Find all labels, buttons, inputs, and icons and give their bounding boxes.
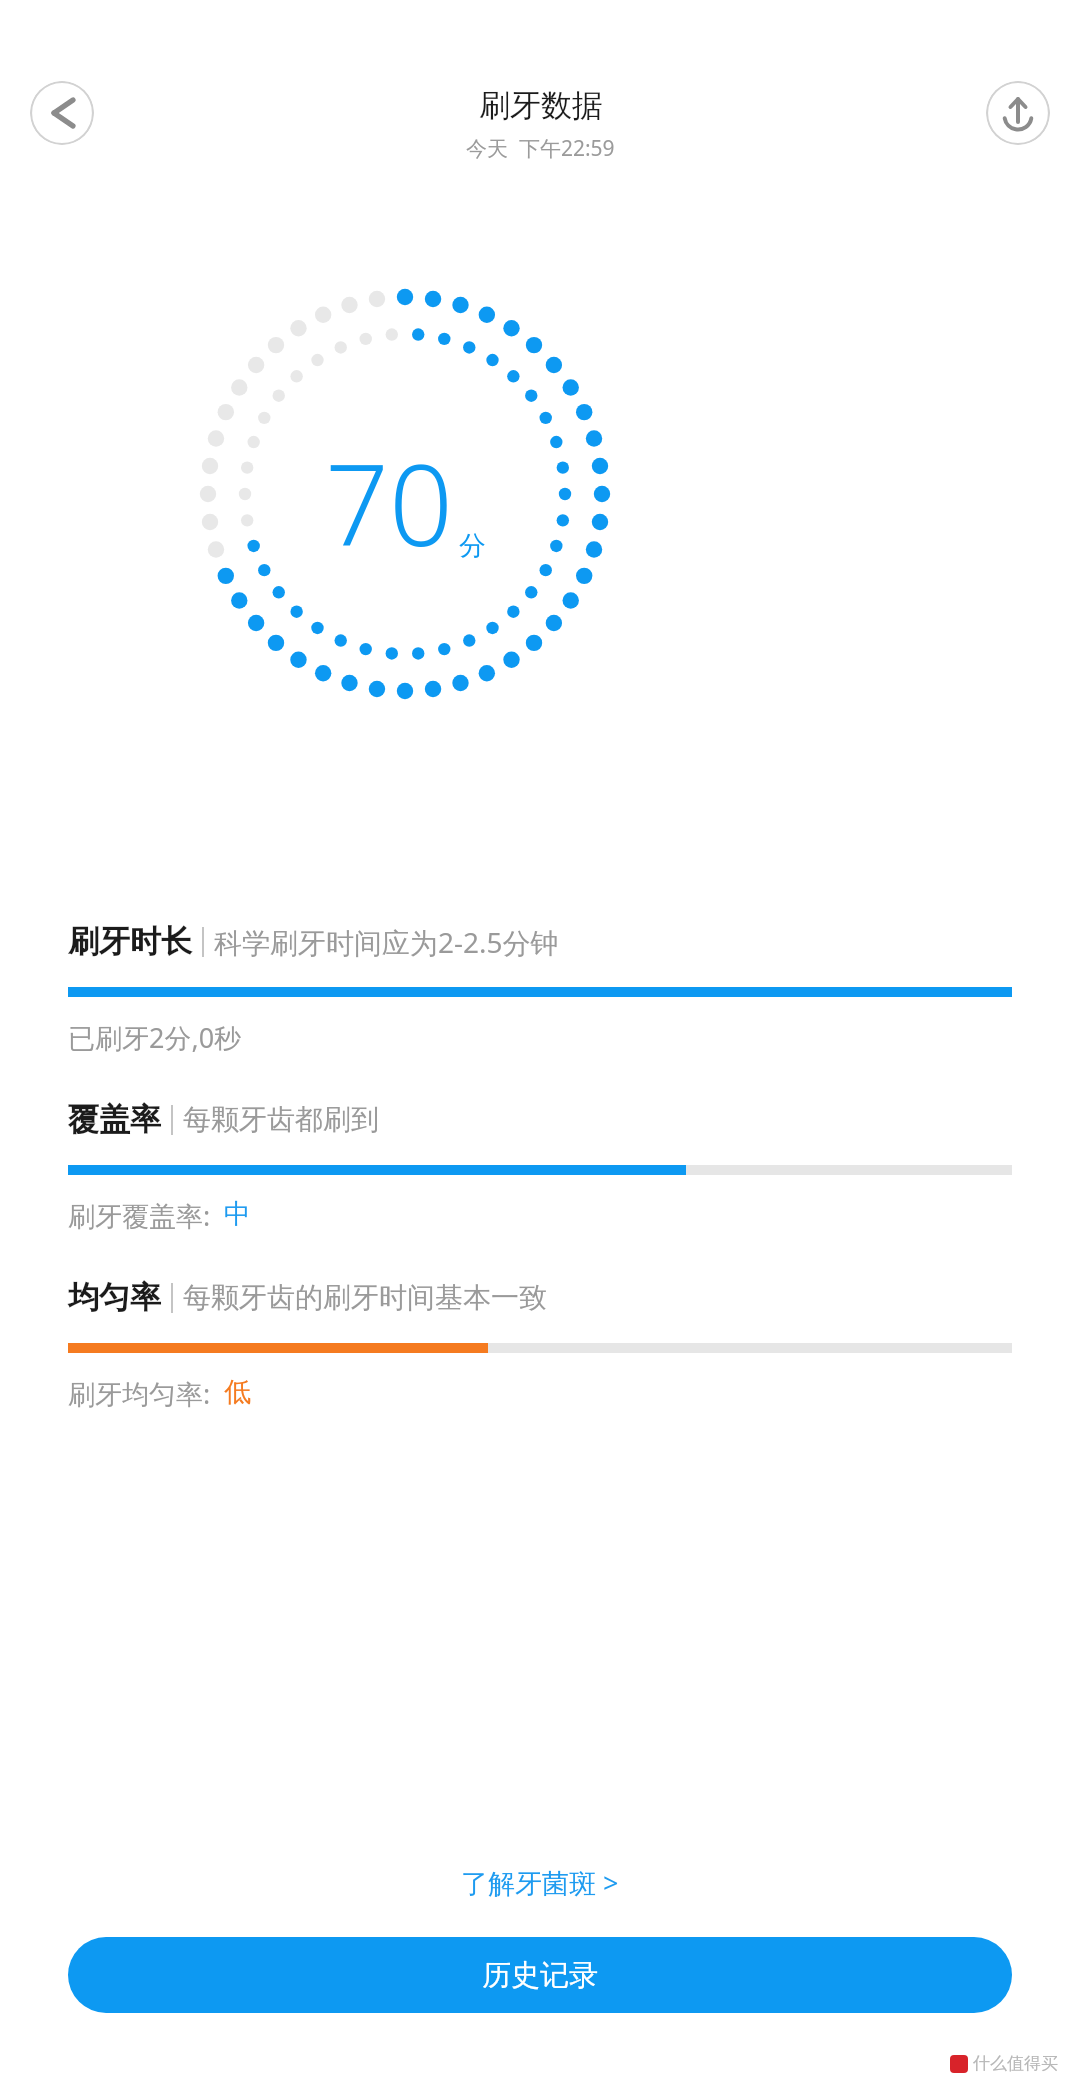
- staticText: 分: [459, 529, 486, 563]
- button[interactable]: Share: [986, 81, 1050, 145]
- staticText: 什么值得买: [973, 2053, 1058, 2074]
- staticText: 70: [325, 426, 453, 579]
- button[interactable]: Back: [30, 81, 94, 145]
- staticText: 每颗牙齿都刷到: [183, 1102, 379, 1137]
- staticText: 每颗牙齿的刷牙时间基本一致: [183, 1280, 547, 1315]
- staticText: 刷牙数据: [479, 86, 603, 125]
- button[interactable]: 历史记录: [68, 1937, 1012, 2013]
- staticText: 刷牙覆盖率:: [68, 1197, 218, 1234]
- staticText: 均匀率: [68, 1278, 161, 1317]
- staticText: 刷牙均匀率:: [68, 1375, 218, 1412]
- staticText: 了解牙菌斑 >: [461, 1864, 619, 1901]
- button[interactable]: 了解牙菌斑 >: [447, 1856, 633, 1909]
- staticText: 历史记录: [482, 1957, 598, 1994]
- staticText: 覆盖率: [68, 1100, 161, 1139]
- staticText: 已刷牙2分,0秒: [68, 1019, 242, 1056]
- staticText: 中: [224, 1197, 251, 1231]
- staticText: 低: [224, 1375, 251, 1409]
- staticText: 刷牙时长: [68, 922, 192, 961]
- staticText: 科学刷牙时间应为2-2.5分钟: [214, 923, 559, 961]
- staticText: 今天 下午22:59: [466, 134, 615, 163]
